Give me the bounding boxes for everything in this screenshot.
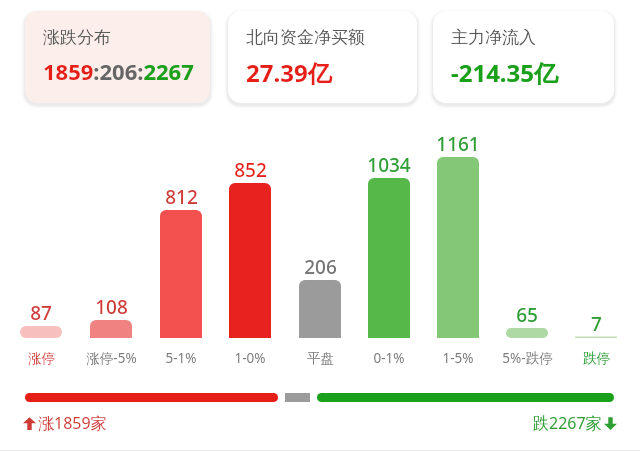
staticText: 1-5% (442, 349, 474, 367)
button[interactable]: 涨停 (1, 347, 81, 369)
button[interactable]: Advancing (23, 412, 107, 434)
staticText: 852 (234, 157, 267, 181)
button[interactable]: 涨跌分布 (25, 11, 210, 103)
staticText: 27.39亿 (246, 56, 332, 89)
staticText: 涨跌分布 (43, 27, 111, 48)
button[interactable]: 平盘 (280, 347, 360, 369)
staticText: 主力净流入 (451, 27, 536, 48)
staticText: 平盘 (307, 350, 334, 367)
staticText: -214.35亿 (451, 56, 559, 89)
staticText: 108 (95, 294, 128, 318)
staticText: 5-1% (165, 349, 197, 367)
staticText: 206 (304, 254, 337, 278)
staticText: 北向资金净买额 (246, 27, 365, 48)
staticText: 1161 (436, 131, 480, 155)
other: Advancing (23, 416, 36, 431)
staticText: 1-0% (234, 349, 266, 367)
button[interactable]: 1-5% (418, 347, 498, 369)
button[interactable]: 跌2267家 (533, 412, 617, 434)
staticText: 5%-跌停 (502, 349, 553, 367)
staticText: 87 (30, 300, 52, 324)
button[interactable]: 1-0% (210, 347, 290, 369)
button[interactable]: 0-1% (349, 347, 429, 369)
button[interactable]: 北向资金净买额 (228, 11, 417, 103)
staticText: 跌2267家 (533, 412, 602, 434)
button[interactable]: 涨停-5% (71, 347, 151, 369)
button[interactable]: 5%-跌停 (487, 347, 567, 369)
staticText: 1034 (367, 152, 411, 176)
staticText: 7 (591, 311, 602, 335)
staticText: 65 (516, 302, 538, 326)
button[interactable]: 5-1% (141, 347, 221, 369)
staticText: 812 (165, 184, 198, 208)
button[interactable]: 主力净流入 (433, 11, 614, 103)
staticText: 涨1859家 (38, 412, 107, 434)
button[interactable]: 跌停 (556, 347, 636, 369)
staticText: 跌停 (583, 350, 610, 367)
staticText: 0-1% (373, 349, 405, 367)
staticText: 涨停-5% (86, 349, 137, 367)
staticText: 1859:206:2267 (43, 56, 194, 86)
staticText: 涨停 (28, 350, 55, 367)
other: Declining (604, 416, 617, 431)
